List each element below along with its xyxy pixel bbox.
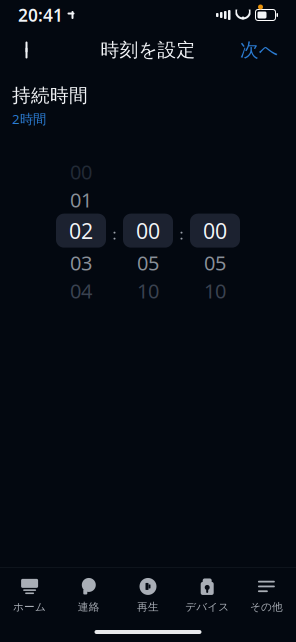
button[interactable]: ホーム: [0, 576, 59, 614]
staticText: 05: [137, 249, 159, 276]
button[interactable]: 再生: [118, 576, 178, 614]
staticText: 02: [69, 216, 93, 245]
staticText: その他: [250, 600, 283, 613]
button[interactable]: 次へ: [228, 30, 290, 70]
staticText: 01: [70, 186, 92, 213]
staticText: 05: [204, 249, 226, 276]
staticText: 00: [136, 216, 160, 245]
staticText: 00: [70, 158, 92, 185]
staticText: 持続時間: [12, 84, 88, 107]
button[interactable]: 連絡: [59, 576, 118, 614]
staticText: 00: [203, 216, 227, 245]
staticText: 時刻を設定: [100, 38, 195, 61]
staticText: 10: [137, 277, 159, 304]
staticText: デバイス: [185, 600, 229, 613]
button[interactable]: デバイス: [178, 576, 237, 614]
staticText: 連絡: [78, 600, 100, 613]
staticText: 10: [204, 277, 226, 304]
staticText: 次へ: [240, 38, 278, 61]
staticText: 2時間: [12, 110, 46, 128]
staticText: 再生: [137, 600, 159, 613]
staticText: 04: [70, 277, 92, 304]
button[interactable]: 戻る: [6, 30, 50, 70]
staticText: 03: [70, 249, 92, 276]
staticText: 20:41: [18, 3, 63, 26]
staticText: ホーム: [13, 600, 46, 613]
button[interactable]: その他: [237, 576, 296, 614]
